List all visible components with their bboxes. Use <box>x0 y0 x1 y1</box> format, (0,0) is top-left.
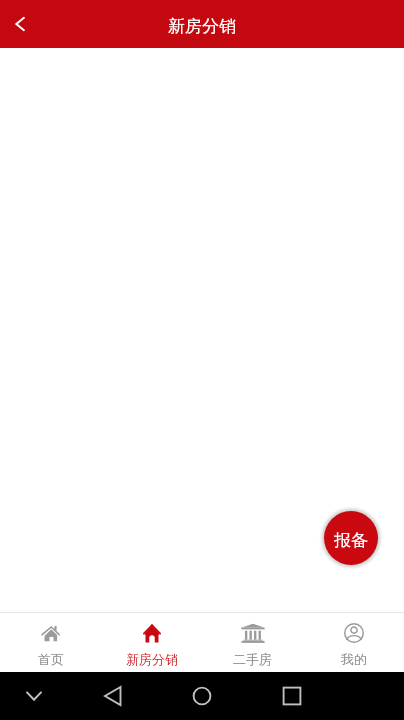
button[interactable]: Hide keyboard <box>12 672 56 720</box>
button[interactable]: Home <box>180 672 224 720</box>
button[interactable]: Back <box>0 0 40 48</box>
button[interactable]: 二手房 <box>202 613 303 672</box>
staticText: 新房分销 <box>168 16 236 37</box>
button[interactable]: Recents <box>270 672 314 720</box>
staticText: 报备 <box>334 530 368 551</box>
button[interactable]: 首页 <box>0 613 101 672</box>
staticText: 我的 <box>341 651 367 667</box>
button[interactable]: 新房分销 <box>101 613 202 672</box>
button[interactable]: Back <box>91 672 135 720</box>
staticText: 首页 <box>38 651 64 667</box>
button[interactable]: 报备 <box>324 511 378 565</box>
staticText: 二手房 <box>233 651 272 667</box>
button[interactable]: 我的 <box>303 613 404 672</box>
staticText: 新房分销 <box>126 651 178 667</box>
